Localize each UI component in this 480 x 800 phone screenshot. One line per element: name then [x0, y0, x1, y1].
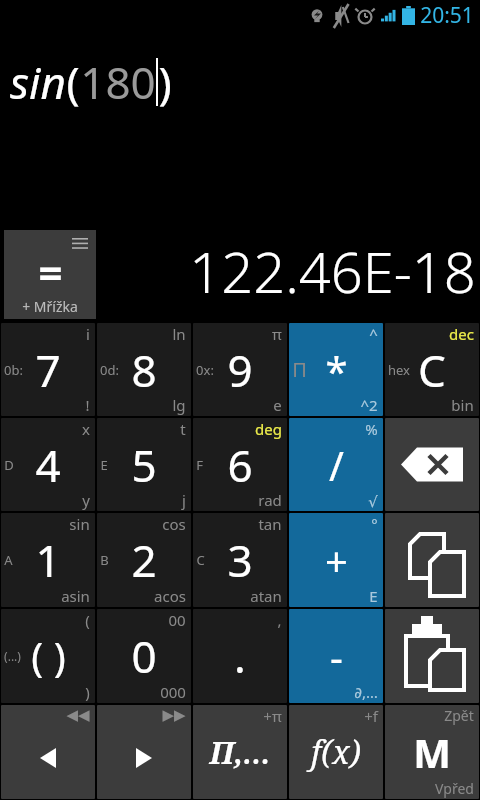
button[interactable]: Paste — [385, 609, 479, 703]
button[interactable]: 1 — [1, 513, 95, 607]
staticText: 0 — [131, 626, 157, 686]
staticText: rad — [258, 490, 282, 510]
staticText: bin — [451, 395, 474, 415]
staticText: 8 — [131, 340, 157, 400]
staticText: ! — [85, 395, 90, 415]
staticText: (...) — [4, 648, 21, 664]
button[interactable]: 7 — [1, 323, 95, 416]
staticText: % — [365, 419, 378, 439]
staticText: j — [182, 490, 186, 510]
staticText: ◀◀ — [66, 706, 90, 723]
staticText: 6 — [227, 435, 253, 495]
staticText: 000 — [160, 682, 186, 702]
staticText: ( — [66, 52, 80, 112]
staticText: 0b: — [4, 361, 23, 379]
staticText: acos — [154, 586, 186, 606]
staticText: tan — [258, 514, 282, 534]
staticText: , — [277, 610, 282, 630]
staticText: lg — [172, 395, 186, 415]
staticText: - — [330, 629, 343, 683]
button[interactable]: 3 — [193, 513, 287, 607]
staticText: t — [180, 419, 186, 439]
button[interactable]: f(x) — [289, 705, 383, 799]
staticText: asin — [61, 586, 90, 606]
staticText: A — [4, 551, 13, 569]
button[interactable]: 4 — [1, 418, 95, 511]
staticText: hex — [388, 361, 410, 379]
staticText: y — [82, 490, 90, 510]
staticText: +π — [263, 706, 282, 726]
staticText: ° — [371, 514, 378, 534]
button[interactable]: . — [193, 609, 287, 703]
staticText: sin — [10, 52, 66, 112]
staticText: D — [4, 456, 14, 474]
staticText: 00 — [168, 610, 186, 630]
staticText: √ — [368, 493, 378, 510]
staticText: C — [418, 340, 446, 400]
button[interactable]: 8 — [97, 323, 191, 416]
staticText: 9 — [227, 340, 253, 400]
staticText: C — [196, 551, 205, 569]
staticText: E — [369, 586, 378, 606]
staticText: ∂,… — [354, 682, 378, 702]
staticText: deg — [255, 419, 282, 439]
staticText: E — [100, 456, 108, 474]
staticText: ▶▶ — [162, 706, 186, 723]
button[interactable]: 0 — [97, 609, 191, 703]
staticText: * — [325, 343, 348, 397]
staticText: 122.46E-18 — [189, 233, 476, 309]
button[interactable]: 9 — [193, 323, 287, 416]
button[interactable]: Move left — [1, 705, 95, 799]
button[interactable]: C — [385, 323, 479, 416]
button[interactable]: 2 — [97, 513, 191, 607]
staticText: Vpřed — [435, 779, 474, 798]
staticText: ^ — [369, 324, 378, 344]
staticText: +f — [364, 706, 378, 726]
staticText: ^2 — [360, 395, 378, 415]
staticText: F — [196, 456, 203, 474]
staticText: dec — [449, 324, 474, 344]
staticText: 5 — [131, 435, 157, 495]
staticText: ( ) — [31, 629, 66, 683]
staticText: 2 — [131, 530, 157, 590]
staticText: = — [38, 243, 63, 300]
button[interactable]: Backspace — [385, 418, 479, 511]
staticText: Π — [292, 356, 307, 383]
staticText: / — [329, 438, 344, 492]
staticText: B — [100, 551, 109, 569]
staticText: Zpět — [444, 706, 474, 725]
staticText: x — [82, 419, 90, 439]
button[interactable]: Move right — [97, 705, 191, 799]
staticText: sin — [69, 514, 90, 534]
staticText: ( — [85, 610, 90, 630]
staticText: cos — [162, 514, 186, 534]
staticText: f(x) — [311, 730, 361, 774]
button[interactable]: + — [289, 513, 383, 607]
staticText: . — [234, 626, 246, 686]
staticText: 0x: — [196, 361, 214, 379]
staticText: e — [273, 395, 282, 415]
staticText: π — [272, 324, 282, 344]
staticText: 20:51 — [420, 1, 474, 30]
staticText: 1 — [35, 530, 61, 590]
staticText: i — [86, 324, 90, 344]
button[interactable]: ( ) — [1, 609, 95, 703]
staticText: atan — [250, 586, 282, 606]
staticText: ln — [172, 324, 186, 344]
button[interactable]: 5 — [97, 418, 191, 511]
staticText: 180 — [80, 52, 156, 112]
button[interactable]: 6 — [193, 418, 287, 511]
button[interactable]: / — [289, 418, 383, 511]
button[interactable]: * — [289, 323, 383, 416]
staticText: Π,… — [209, 732, 271, 773]
staticText: ) — [158, 52, 172, 112]
button[interactable]: = — [4, 230, 96, 319]
button[interactable]: M — [385, 705, 479, 799]
button[interactable]: Copy — [385, 513, 479, 607]
staticText: + Mřížka — [22, 297, 78, 316]
button[interactable]: Π,… — [193, 705, 287, 799]
staticText: ) — [85, 682, 90, 702]
staticText: 4 — [35, 435, 61, 495]
staticText: 0d: — [100, 361, 119, 379]
button[interactable]: - — [289, 609, 383, 703]
